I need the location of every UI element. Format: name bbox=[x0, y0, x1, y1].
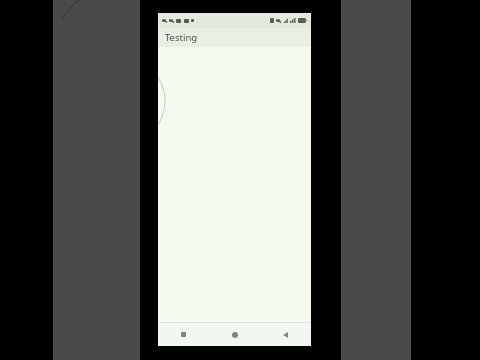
button[interactable]: Recent apps bbox=[158, 323, 209, 346]
button[interactable]: Home bbox=[209, 323, 260, 346]
button[interactable]: Testing bbox=[158, 28, 311, 47]
button[interactable]: Back bbox=[260, 323, 311, 346]
staticText: Testing bbox=[165, 31, 198, 44]
